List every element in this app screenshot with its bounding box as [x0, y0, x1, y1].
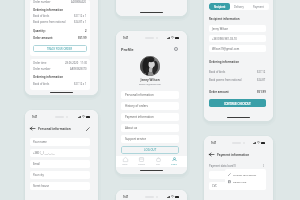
staticText: $27.12 x 1: [74, 82, 87, 86]
staticText: Quantity:: [33, 29, 46, 33]
staticText: About us: [125, 126, 138, 130]
staticText: $24.87: [257, 78, 266, 82]
staticText: History of orders: [125, 104, 148, 108]
staticText: Your name: [33, 140, 47, 144]
staticText: Delete card: [233, 180, 247, 183]
staticText: Book of birds: [209, 70, 226, 74]
staticText: CVC: [212, 184, 217, 188]
button[interactable]: Profile: [167, 156, 181, 167]
button[interactable]: Payment: [247, 3, 269, 10]
staticText: $27.12 x 1: [74, 14, 87, 18]
staticText: Delivery: [234, 5, 244, 9]
button[interactable]: More options: [261, 163, 266, 168]
staticText: Street house: [33, 184, 49, 188]
staticText: Order number: [33, 67, 51, 71]
button[interactable]: Support service: [121, 135, 179, 143]
button[interactable]: Email: [30, 160, 90, 168]
staticText: Profile: [121, 47, 134, 52]
button[interactable]: Settings: [173, 46, 179, 52]
staticText: Personal information: [38, 127, 71, 131]
button[interactable]: Change card details: [225, 171, 266, 178]
button[interactable]: Your city: [30, 171, 90, 179]
staticText: Order number: [33, 0, 51, 4]
staticText: Recipient information: [209, 17, 240, 21]
staticText: $27.12: [257, 70, 266, 74]
staticText: Book of birds: [33, 14, 50, 18]
button[interactable]: Recipient: [209, 3, 230, 10]
staticText: Order amount:: [33, 36, 53, 40]
button[interactable]: Delete card: [225, 178, 266, 185]
staticText: 9:41: [123, 195, 129, 199]
button[interactable]: History of orders: [121, 102, 179, 110]
button[interactable]: Home: [118, 156, 132, 167]
staticText: Payment information: [125, 115, 154, 119]
button[interactable]: Your name: [30, 138, 90, 146]
staticText: Email: [33, 162, 40, 166]
staticText: $24.87 x 1: [74, 20, 87, 24]
button[interactable]: Delivery: [230, 3, 247, 10]
staticText: Personal information: [125, 93, 154, 97]
button[interactable]: Catalog: [134, 156, 148, 167]
button[interactable]: Edit: [84, 125, 91, 132]
button[interactable]: CONTINUE CHECKOUT: [209, 99, 266, 107]
button[interactable]: Payment information: [121, 113, 179, 121]
staticText: +380 (__) ___-__-__: [33, 151, 55, 155]
staticText: Ordering information: [33, 75, 63, 79]
button[interactable]: Street house: [30, 182, 90, 190]
staticText: Order time: [33, 61, 47, 65]
staticText: TRACK YOUR ORDER: [47, 47, 73, 51]
staticText: Recipient: [214, 5, 226, 9]
staticText: Cart: [156, 163, 160, 166]
staticText: Book poems from national: [33, 20, 66, 24]
button[interactable]: TRACK YOUR ORDER: [33, 45, 87, 52]
staticText: Change card details: [233, 173, 257, 176]
staticText: $51.99: [257, 90, 266, 94]
staticText: Book poems from national: [209, 78, 242, 82]
staticText: 9:41: [211, 141, 217, 145]
staticText: $51.99: [78, 36, 87, 40]
staticText: +38 (098)-981-03-10: [212, 37, 237, 41]
staticText: Profile: [171, 163, 177, 166]
staticText: 2: [85, 29, 87, 33]
staticText: Support service: [125, 137, 147, 141]
button[interactable]: Personal information: [121, 91, 179, 99]
button[interactable]: [209, 171, 266, 179]
staticText: Payment data (card1): [209, 164, 236, 168]
staticText: CONTINUE CHECKOUT: [224, 102, 251, 105]
staticText: Ordering information: [33, 8, 63, 12]
button[interactable]: Wilson19@gmail.com: [209, 45, 266, 52]
staticText: Catalog: [138, 163, 145, 166]
button[interactable]: Jenny Wilson: [209, 25, 266, 32]
staticText: LOG OUT: [144, 148, 157, 152]
button[interactable]: CVC: [209, 182, 266, 190]
button[interactable]: Cart: [151, 156, 165, 167]
button[interactable]: Back: [29, 125, 36, 132]
staticText: Order amount: [209, 90, 229, 94]
staticText: Wilson19@gmail.com: [212, 47, 240, 51]
button[interactable]: About us: [121, 124, 179, 132]
staticText: wilson19@gmail.com: [116, 83, 184, 86]
staticText: A283884420: [71, 0, 87, 4]
staticText: Payment: [253, 5, 264, 9]
button[interactable]: +380 (__) ___-__-__: [30, 149, 90, 157]
staticText: 9:41: [32, 115, 38, 119]
staticText: Jenny Wilson: [116, 78, 184, 82]
staticText: Ordering information: [209, 60, 239, 64]
staticText: Book of birds: [33, 82, 50, 86]
button[interactable]: Back: [208, 151, 215, 158]
staticText: 28.06.2020 11:30: [65, 61, 87, 65]
staticText: Home: [122, 163, 128, 166]
button[interactable]: +38 (098)-981-03-10: [209, 35, 266, 42]
staticText: A8093828370: [70, 67, 87, 71]
staticText: Your city: [33, 173, 44, 177]
staticText: Jenny Wilson: [212, 27, 229, 31]
button[interactable]: LOG OUT: [121, 146, 179, 154]
staticText: 9:41: [123, 36, 129, 40]
staticText: Payment information: [217, 153, 250, 157]
